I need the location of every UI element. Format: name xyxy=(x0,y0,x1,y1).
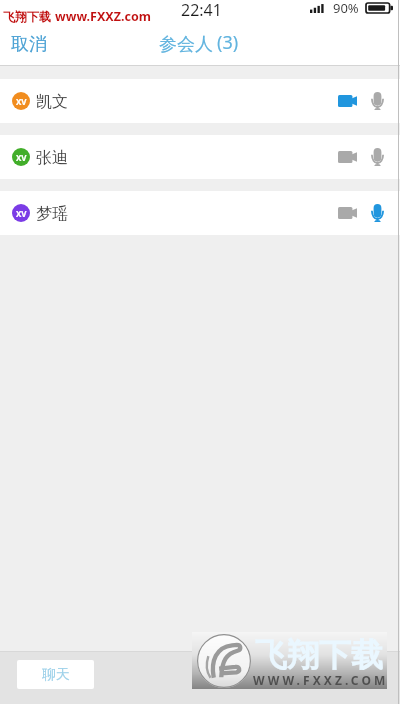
staticText: 飞翔下载 xyxy=(255,635,383,675)
staticText: 飞翔下载 xyxy=(3,9,51,24)
staticText: 凯文 xyxy=(36,92,68,112)
staticText: 取消 xyxy=(11,33,47,55)
staticText: XV xyxy=(16,208,27,219)
staticText: XV xyxy=(16,152,27,163)
button[interactable]: XV xyxy=(0,191,400,235)
staticText: 90% xyxy=(333,0,359,17)
staticText: www.FXXZ.com xyxy=(55,8,151,25)
button[interactable]: Camera xyxy=(331,79,363,123)
button[interactable]: Microphone xyxy=(361,135,393,179)
button[interactable]: Camera xyxy=(331,191,363,235)
button[interactable]: Microphone xyxy=(361,79,393,123)
staticText: 聊天 xyxy=(42,666,70,684)
button[interactable]: Microphone xyxy=(361,191,393,235)
staticText: WWW.FXXZ.COM xyxy=(253,672,389,688)
button[interactable]: XV xyxy=(0,135,400,179)
staticText: 张迪 xyxy=(36,148,68,168)
staticText: 参会人 xyxy=(159,33,213,56)
button[interactable]: 取消 xyxy=(0,24,63,64)
button[interactable]: XV xyxy=(0,79,400,123)
staticText: (3) xyxy=(217,30,239,55)
staticText: 梦瑶 xyxy=(36,204,68,224)
staticText: XV xyxy=(16,96,27,107)
staticText: 22:41 xyxy=(181,0,222,21)
button[interactable]: 聊天 xyxy=(17,660,94,689)
button[interactable]: Camera xyxy=(331,135,363,179)
